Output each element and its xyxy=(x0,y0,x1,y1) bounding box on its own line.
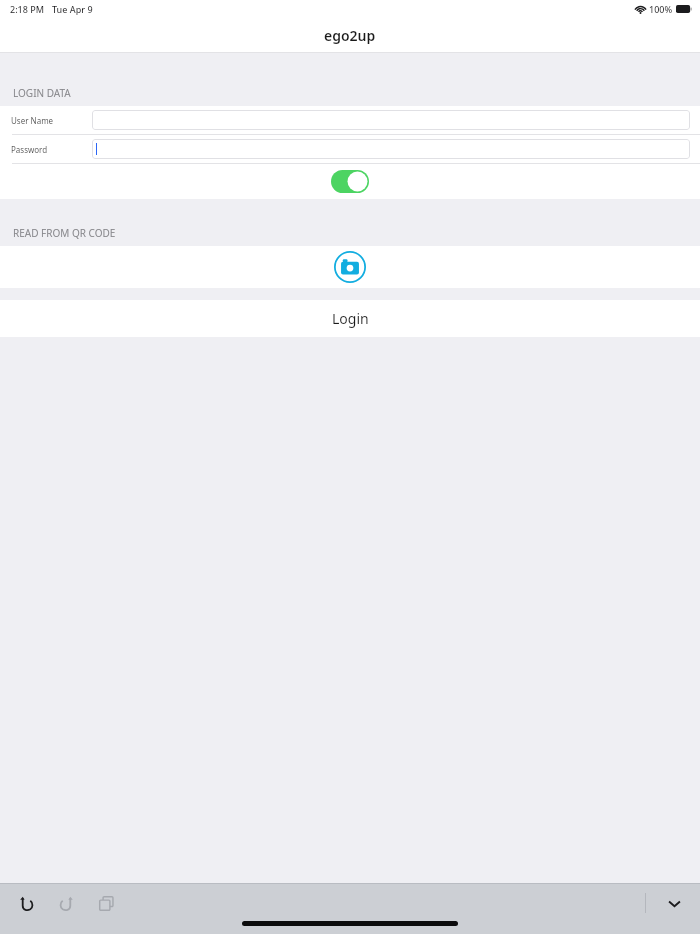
staticText: 2:18 PM xyxy=(10,3,44,15)
button[interactable]: Password xyxy=(0,135,700,163)
button[interactable]: Paste xyxy=(92,889,120,917)
staticText: Login xyxy=(332,309,369,328)
staticText: Tue Apr 9 xyxy=(52,3,93,15)
button[interactable]: Redo xyxy=(52,889,80,917)
button[interactable]: Hide keyboard xyxy=(660,889,688,917)
button[interactable]: User Name xyxy=(0,106,700,134)
button[interactable]: Login xyxy=(0,300,700,337)
staticText: READ FROM QR CODE xyxy=(13,226,116,240)
staticText: 100% xyxy=(649,3,673,15)
staticText: LOGIN DATA xyxy=(13,86,71,100)
button[interactable]: Remember me toggle xyxy=(331,170,369,193)
staticText: Password xyxy=(11,144,48,155)
button[interactable]: Read from QR code xyxy=(0,246,700,288)
button[interactable]: Read from QR code xyxy=(334,251,366,283)
staticText: User Name xyxy=(11,115,54,126)
button[interactable]: Undo xyxy=(12,889,40,917)
staticText: ego2up xyxy=(324,26,376,45)
